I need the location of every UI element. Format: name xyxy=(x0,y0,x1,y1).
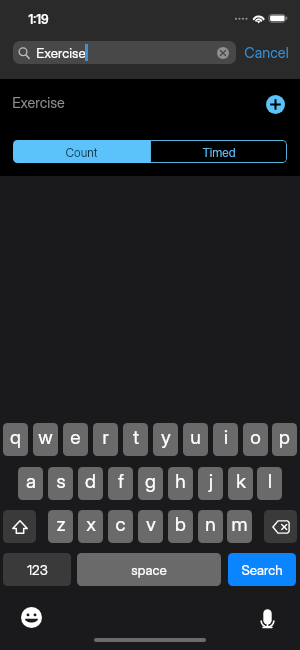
button[interactable]: Count xyxy=(13,140,150,163)
button[interactable]: Emoji keyboard xyxy=(21,607,42,628)
staticText: Exercise xyxy=(12,94,65,111)
staticText: e xyxy=(70,425,81,448)
staticText: u xyxy=(190,425,201,448)
button[interactable]: Exercise xyxy=(13,41,236,64)
button[interactable]: n xyxy=(198,510,223,543)
button[interactable]: c xyxy=(108,510,133,543)
staticText: k xyxy=(236,469,246,492)
button[interactable]: f xyxy=(108,467,133,500)
button[interactable]: a xyxy=(18,467,43,500)
button[interactable]: Clear text xyxy=(217,47,229,59)
button[interactable]: r xyxy=(93,423,118,456)
staticText: x xyxy=(86,512,96,535)
staticText: Search xyxy=(241,562,283,578)
button[interactable]: Search xyxy=(228,553,296,586)
button[interactable]: e xyxy=(63,423,88,456)
button[interactable]: 123 xyxy=(3,553,71,586)
button[interactable]: Shift xyxy=(3,510,36,543)
button[interactable]: Add exercise xyxy=(266,95,285,114)
staticText: Count xyxy=(65,145,98,160)
button[interactable]: Dictation xyxy=(257,604,278,625)
button[interactable]: b xyxy=(168,510,193,543)
button[interactable]: Timed xyxy=(150,140,287,163)
staticText: f xyxy=(118,469,124,492)
staticText: v xyxy=(146,512,156,535)
staticText: j xyxy=(209,469,213,492)
staticText: c xyxy=(115,512,126,535)
staticText: Exercise xyxy=(36,45,86,61)
staticText: Timed xyxy=(202,145,236,160)
staticText: w xyxy=(38,425,53,448)
staticText: g xyxy=(145,469,156,492)
button[interactable]: u xyxy=(183,423,208,456)
button[interactable]: j xyxy=(198,467,223,500)
button[interactable]: x xyxy=(78,510,103,543)
staticText: space xyxy=(131,562,167,578)
staticText: r xyxy=(102,425,109,448)
button[interactable]: Cancel xyxy=(243,41,289,64)
button[interactable]: h xyxy=(168,467,193,500)
button[interactable]: o xyxy=(243,423,268,456)
button[interactable]: space xyxy=(77,553,221,586)
staticText: h xyxy=(175,469,186,492)
button[interactable]: d xyxy=(78,467,103,500)
staticText: t xyxy=(133,425,139,448)
button[interactable]: i xyxy=(213,423,238,456)
staticText: m xyxy=(231,512,248,535)
staticText: z xyxy=(56,512,66,535)
staticText: Cancel xyxy=(244,44,289,62)
staticText: i xyxy=(224,425,228,448)
staticText: a xyxy=(26,469,36,492)
staticText: o xyxy=(250,425,261,448)
button[interactable]: p xyxy=(272,423,297,456)
staticText: l xyxy=(268,469,272,492)
staticText: n xyxy=(205,512,216,535)
staticText: 1:19 xyxy=(28,12,49,27)
button[interactable]: m xyxy=(227,510,252,543)
button[interactable]: s xyxy=(48,467,73,500)
button[interactable]: l xyxy=(257,467,282,500)
button[interactable]: y xyxy=(153,423,178,456)
button[interactable]: Backspace xyxy=(264,510,297,543)
button[interactable]: v xyxy=(138,510,163,543)
button[interactable]: z xyxy=(48,510,73,543)
button[interactable]: k xyxy=(228,467,253,500)
staticText: d xyxy=(85,469,96,492)
staticText: y xyxy=(161,425,171,448)
staticText: s xyxy=(56,469,66,492)
staticText: 123 xyxy=(27,562,48,578)
button[interactable]: w xyxy=(33,423,58,456)
button[interactable]: g xyxy=(138,467,163,500)
staticText: b xyxy=(175,512,186,535)
button[interactable]: q xyxy=(3,423,28,456)
staticText: q xyxy=(10,425,21,448)
staticText: p xyxy=(279,425,290,448)
button[interactable]: t xyxy=(123,423,148,456)
